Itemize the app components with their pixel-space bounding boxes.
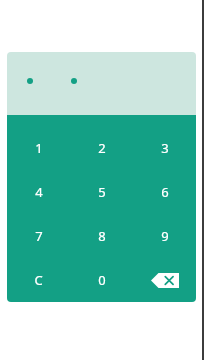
button[interactable]: 2: [70, 126, 133, 170]
staticText: C: [34, 271, 43, 289]
button[interactable]: 9: [133, 214, 196, 258]
button[interactable]: 8: [70, 214, 133, 258]
staticText: 3: [161, 139, 169, 157]
button[interactable]: 6: [133, 170, 196, 214]
staticText: 4: [35, 183, 43, 201]
staticText: 0: [98, 271, 106, 289]
button[interactable]: 1: [7, 126, 70, 170]
button[interactable]: 0: [70, 258, 133, 302]
button[interactable]: 7: [7, 214, 70, 258]
button[interactable]: 4: [7, 170, 70, 214]
staticText: 5: [98, 183, 106, 201]
staticText: 8: [98, 227, 106, 245]
button[interactable]: 5: [70, 170, 133, 214]
staticText: 2: [98, 139, 106, 157]
staticText: 7: [35, 227, 43, 245]
staticText: 6: [161, 183, 169, 201]
button[interactable]: Backspace: [133, 258, 196, 302]
staticText: 1: [35, 139, 43, 157]
button[interactable]: 3: [133, 126, 196, 170]
staticText: 9: [161, 227, 169, 245]
button[interactable]: C: [7, 258, 70, 302]
